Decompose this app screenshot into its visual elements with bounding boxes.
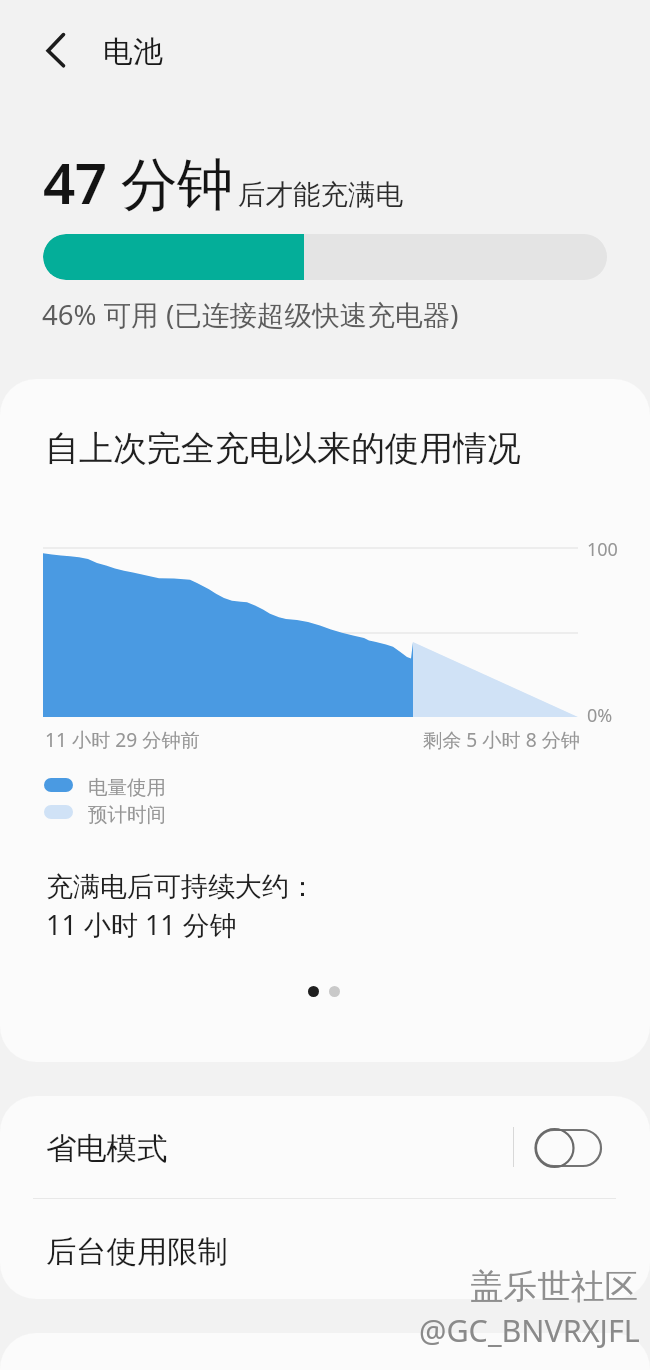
button[interactable]: 后台使用限制 [0,1199,650,1299]
staticText: 100 [587,537,618,562]
staticText: 11 小时 29 分钟前 [45,726,200,752]
staticText: 0% [587,703,613,728]
button[interactable]: Power saving mode toggle, off [535,1126,605,1170]
staticText: 46% 可用 (已连接超级快速充电器) [42,295,459,333]
staticText: 电量使用 [88,775,166,800]
staticText: 47 分钟 [43,144,233,221]
staticText: 盖乐世社区 [470,1266,638,1308]
staticText: 省电模式 [46,1130,168,1168]
staticText: 11 小时 11 分钟 [46,906,237,943]
staticText: 自上次完全充电以来的使用情况 [45,427,521,470]
staticText: 充满电后可持续大约： [46,870,316,904]
staticText: @GC_BNVRXJFL [419,1309,640,1351]
staticText: 电池 [103,33,163,71]
button[interactable]: Battery usage since last full charge [0,379,650,1062]
button[interactable]: 省电模式 [0,1096,650,1198]
staticText: 后台使用限制 [46,1233,228,1271]
button[interactable]: More battery settings [0,1333,650,1370]
staticText: 预计时间 [88,802,166,827]
staticText: 剩余 5 小时 8 分钟 [423,726,581,752]
staticText: 后才能充满电 [238,178,403,213]
button[interactable]: Back [22,16,90,84]
